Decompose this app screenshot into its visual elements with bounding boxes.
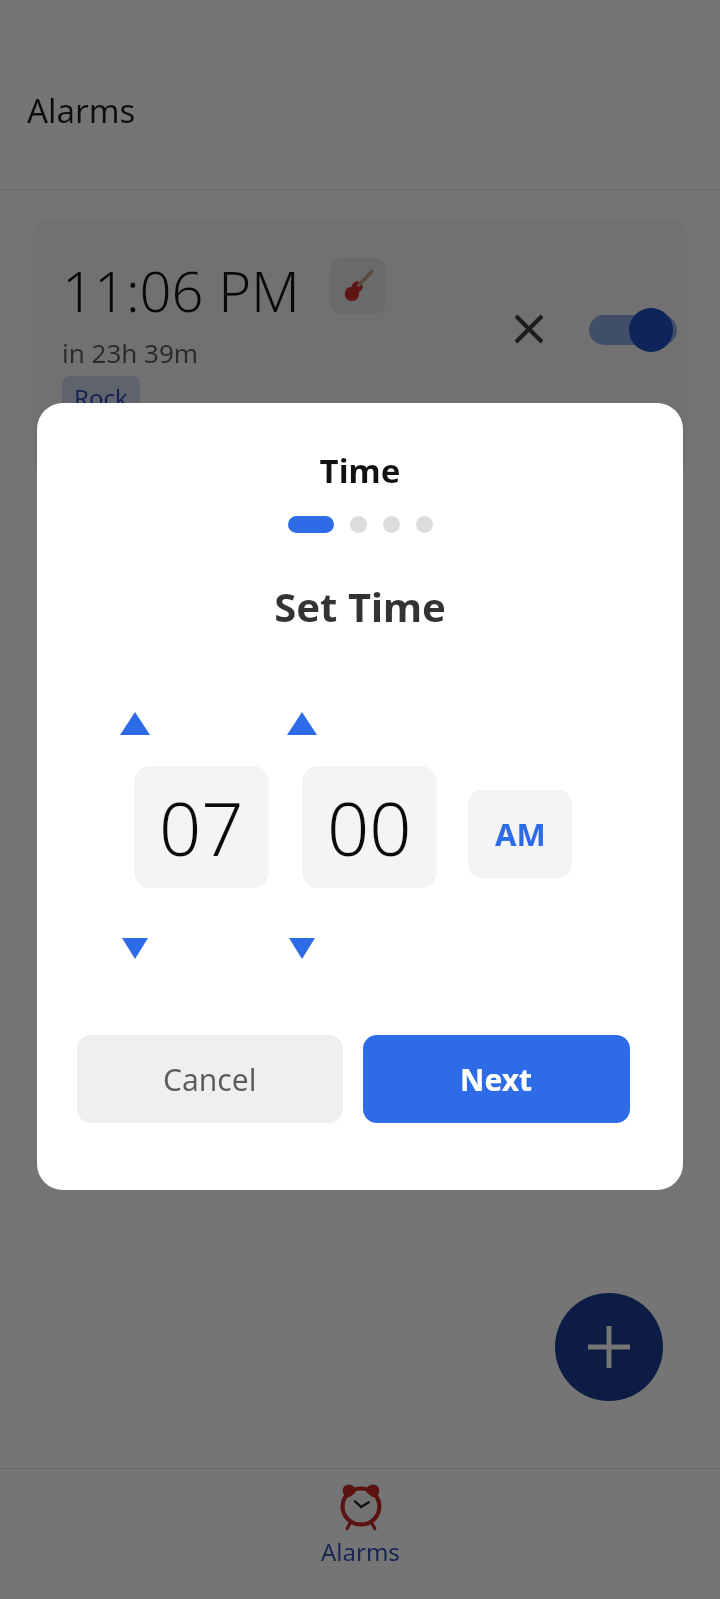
staticText: Rock [74, 381, 128, 414]
button[interactable]: Alarms [321, 1483, 400, 1568]
button[interactable]: Decrease hour [110, 926, 160, 971]
button[interactable]: 00 [302, 766, 437, 888]
staticText: Cancel [163, 1059, 257, 1100]
button[interactable]: Dismiss alarm [503, 303, 555, 355]
button[interactable]: Decrease minute [277, 926, 327, 971]
button[interactable]: Add alarm [555, 1293, 663, 1401]
staticText: Alarms [27, 88, 136, 133]
staticText: AM [495, 813, 546, 855]
staticText: Alarms [321, 1535, 400, 1568]
button[interactable]: AM [468, 790, 572, 878]
staticText: Set Time [37, 579, 683, 633]
staticText: 00 [327, 777, 412, 878]
staticText: 11:06 PM [62, 252, 300, 328]
button[interactable]: Cancel [77, 1035, 343, 1123]
button[interactable]: Increase minute [275, 700, 329, 747]
button[interactable]: 11:06 PM [33, 218, 687, 478]
staticText: Time [37, 448, 683, 493]
staticText: in 23h 39m [62, 335, 199, 370]
staticText: Next [460, 1059, 533, 1100]
button[interactable]: Increase hour [108, 700, 162, 747]
staticText: 07 [159, 777, 244, 878]
button[interactable]: Next [363, 1035, 630, 1123]
button[interactable]: 07 [134, 766, 269, 888]
button[interactable]: Alarm enabled [589, 308, 677, 352]
